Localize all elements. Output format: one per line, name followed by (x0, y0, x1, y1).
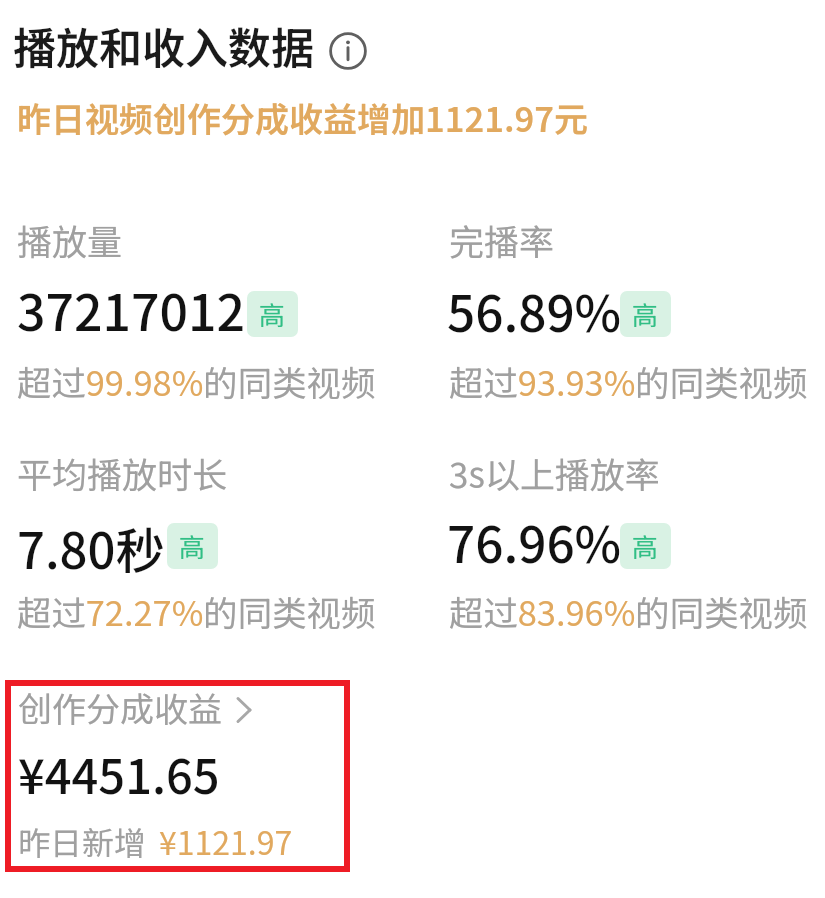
staticText: 播放和收入数据 (13, 14, 314, 76)
staticText: 昨日视频创作分成收益增加1121.97元 (17, 93, 588, 142)
button[interactable]: About playback and income data (327, 30, 369, 72)
staticText: 37217012 (17, 273, 245, 345)
staticText: 播放量 (17, 214, 123, 265)
button[interactable] (10, 210, 430, 400)
staticText: 3s以上播放率 (449, 447, 660, 498)
button[interactable] (10, 443, 430, 633)
staticText: 完播率 (449, 214, 555, 265)
staticText: 超过72.27%的同类视频 (17, 586, 376, 636)
staticText: 7.80秒 (17, 512, 165, 583)
staticText: ¥4451.65 (18, 739, 220, 807)
button[interactable] (442, 443, 817, 633)
button[interactable] (442, 210, 817, 400)
staticText: 高 (179, 527, 206, 565)
button[interactable]: 创作分成收益 (5, 680, 350, 872)
staticText: 高 (259, 295, 286, 333)
staticText: ¥1121.97 (159, 818, 293, 864)
staticText: 56.89% (447, 275, 622, 347)
button[interactable]: Open creator revenue details (233, 692, 259, 728)
staticText: 创作分成收益 (18, 683, 222, 732)
staticText: 昨日新增 (18, 818, 147, 864)
staticText: 高 (632, 295, 659, 333)
staticText: 超过99.98%的同类视频 (17, 356, 376, 406)
staticText: 76.96% (447, 506, 622, 578)
staticText: 超过83.96%的同类视频 (449, 586, 808, 636)
staticText: 高 (632, 527, 659, 565)
staticText: 超过93.93%的同类视频 (449, 356, 808, 406)
staticText: 平均播放时长 (17, 447, 228, 498)
